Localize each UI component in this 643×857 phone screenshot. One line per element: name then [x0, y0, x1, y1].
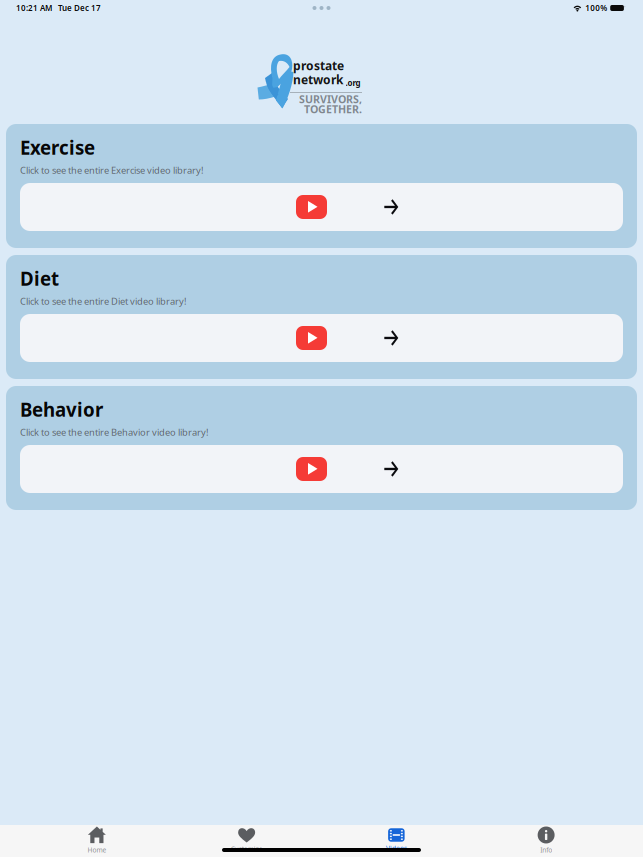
staticText: Info — [540, 845, 552, 854]
staticText: Click to see the entire Exercise video l… — [20, 164, 204, 176]
staticText: Click to see the entire Diet video libra… — [20, 295, 187, 307]
staticText: Click to see the entire Behavior video l… — [20, 426, 209, 438]
button[interactable]: Videos — [321, 825, 471, 857]
staticText: TOGETHER. — [304, 102, 362, 116]
staticText: Home — [87, 845, 106, 854]
button[interactable]: Open the Behavior YouTube video library — [20, 445, 623, 493]
staticText: Exercise — [20, 135, 95, 160]
staticText: Tue Dec 17 — [58, 3, 101, 13]
button[interactable]: Home — [22, 825, 172, 857]
staticText: 100% — [585, 3, 607, 13]
staticText: Behavior — [20, 397, 103, 422]
button[interactable]: Customize — [172, 825, 322, 857]
button[interactable]: Open the Exercise YouTube video library — [20, 183, 623, 231]
staticText: prostate — [293, 57, 344, 73]
staticText: Diet — [20, 266, 59, 291]
button[interactable]: Info — [471, 825, 621, 857]
staticText: 10:21 AM — [16, 3, 52, 13]
staticText: .org — [345, 78, 360, 88]
button[interactable]: Open the Diet YouTube video library — [20, 314, 623, 362]
staticText: SURVIVORS, — [299, 92, 362, 106]
staticText: network — [293, 71, 343, 87]
staticText: Customize — [231, 844, 263, 853]
staticText: Videos — [386, 844, 407, 853]
